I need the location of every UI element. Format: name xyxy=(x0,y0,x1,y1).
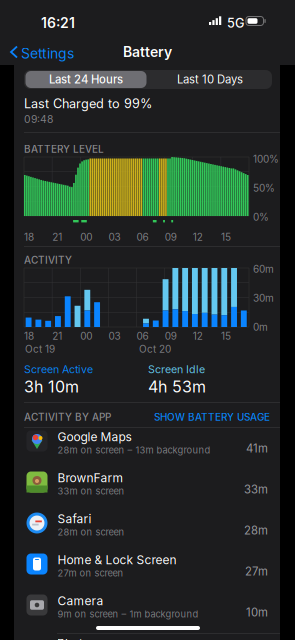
staticText: Last 10 Days xyxy=(177,73,243,86)
staticText: 33m xyxy=(244,483,268,496)
staticText: 18 xyxy=(24,231,34,243)
staticText: 09:48 xyxy=(24,113,53,126)
staticText: 10m xyxy=(246,606,268,619)
staticText: Camera xyxy=(57,594,103,608)
staticText: 27m on screen xyxy=(57,567,123,579)
staticText: Photos xyxy=(57,636,96,640)
staticText: Home & Lock Screen xyxy=(57,553,176,567)
staticText: 28m xyxy=(244,524,268,537)
staticText: ACTIVITY BY APP xyxy=(24,411,111,423)
staticText: 06 xyxy=(136,330,148,342)
staticText: 09 xyxy=(165,330,177,342)
staticText: 09 xyxy=(165,231,177,243)
staticText: 5G xyxy=(227,15,244,31)
staticText: 27m xyxy=(245,565,268,578)
staticText: 100% xyxy=(253,153,279,165)
staticText: 50% xyxy=(253,182,275,194)
button[interactable]: Settings xyxy=(0,40,72,64)
staticText: 4h 53m xyxy=(148,377,206,396)
staticText: Oct 20 xyxy=(139,343,171,355)
staticText: Oct 19 xyxy=(25,343,55,355)
staticText: 0% xyxy=(253,211,269,223)
staticText: 30m xyxy=(253,292,274,304)
staticText: 33m on screen xyxy=(57,485,124,497)
button[interactable]: SHOW BATTERY USAGE xyxy=(140,411,270,423)
staticText: BATTERY LEVEL xyxy=(24,143,104,155)
staticText: Battery xyxy=(123,43,172,60)
staticText: BrownFarm xyxy=(57,471,123,485)
staticText: 3h 10m xyxy=(24,377,79,396)
staticText: Last Charged to 99% xyxy=(24,96,152,111)
staticText: 60m xyxy=(253,263,274,275)
button[interactable]: Last 24 Hours xyxy=(25,71,146,88)
staticText: Screen Active xyxy=(24,363,93,376)
staticText: SHOW BATTERY USAGE xyxy=(154,411,270,423)
button[interactable]: Home & Lock Screen xyxy=(14,551,280,592)
button[interactable]: Camera xyxy=(14,592,280,633)
button[interactable]: Google Maps xyxy=(14,428,280,469)
button[interactable]: Safari xyxy=(14,510,280,551)
staticText: 16:21 xyxy=(41,14,75,31)
staticText: 06 xyxy=(136,231,148,243)
staticText: Settings xyxy=(21,45,74,62)
staticText: 21 xyxy=(52,330,62,342)
staticText: 00 xyxy=(80,231,92,243)
staticText: ACTIVITY xyxy=(24,254,72,266)
staticText: 18 xyxy=(24,330,34,342)
button[interactable]: Last 10 Days xyxy=(149,71,270,88)
staticText: 12 xyxy=(193,231,203,243)
staticText: Screen Idle xyxy=(148,363,205,376)
staticText: 21 xyxy=(52,231,62,243)
staticText: 28m on screen xyxy=(57,526,124,538)
staticText: 41m xyxy=(246,442,268,455)
staticText: 03 xyxy=(108,231,120,243)
staticText: 03 xyxy=(108,330,120,342)
staticText: 00 xyxy=(80,330,92,342)
staticText: 9m on screen – 1m background xyxy=(57,608,198,620)
staticText: 15 xyxy=(221,330,231,342)
button[interactable]: BrownFarm xyxy=(14,469,280,510)
staticText: 28m on screen – 13m background xyxy=(57,444,210,456)
staticText: Last 24 Hours xyxy=(49,73,123,86)
staticText: 0m xyxy=(253,321,268,333)
staticText: 15 xyxy=(221,231,231,243)
staticText: 12 xyxy=(193,330,203,342)
staticText: Safari xyxy=(57,512,91,526)
staticText: Google Maps xyxy=(57,430,131,444)
